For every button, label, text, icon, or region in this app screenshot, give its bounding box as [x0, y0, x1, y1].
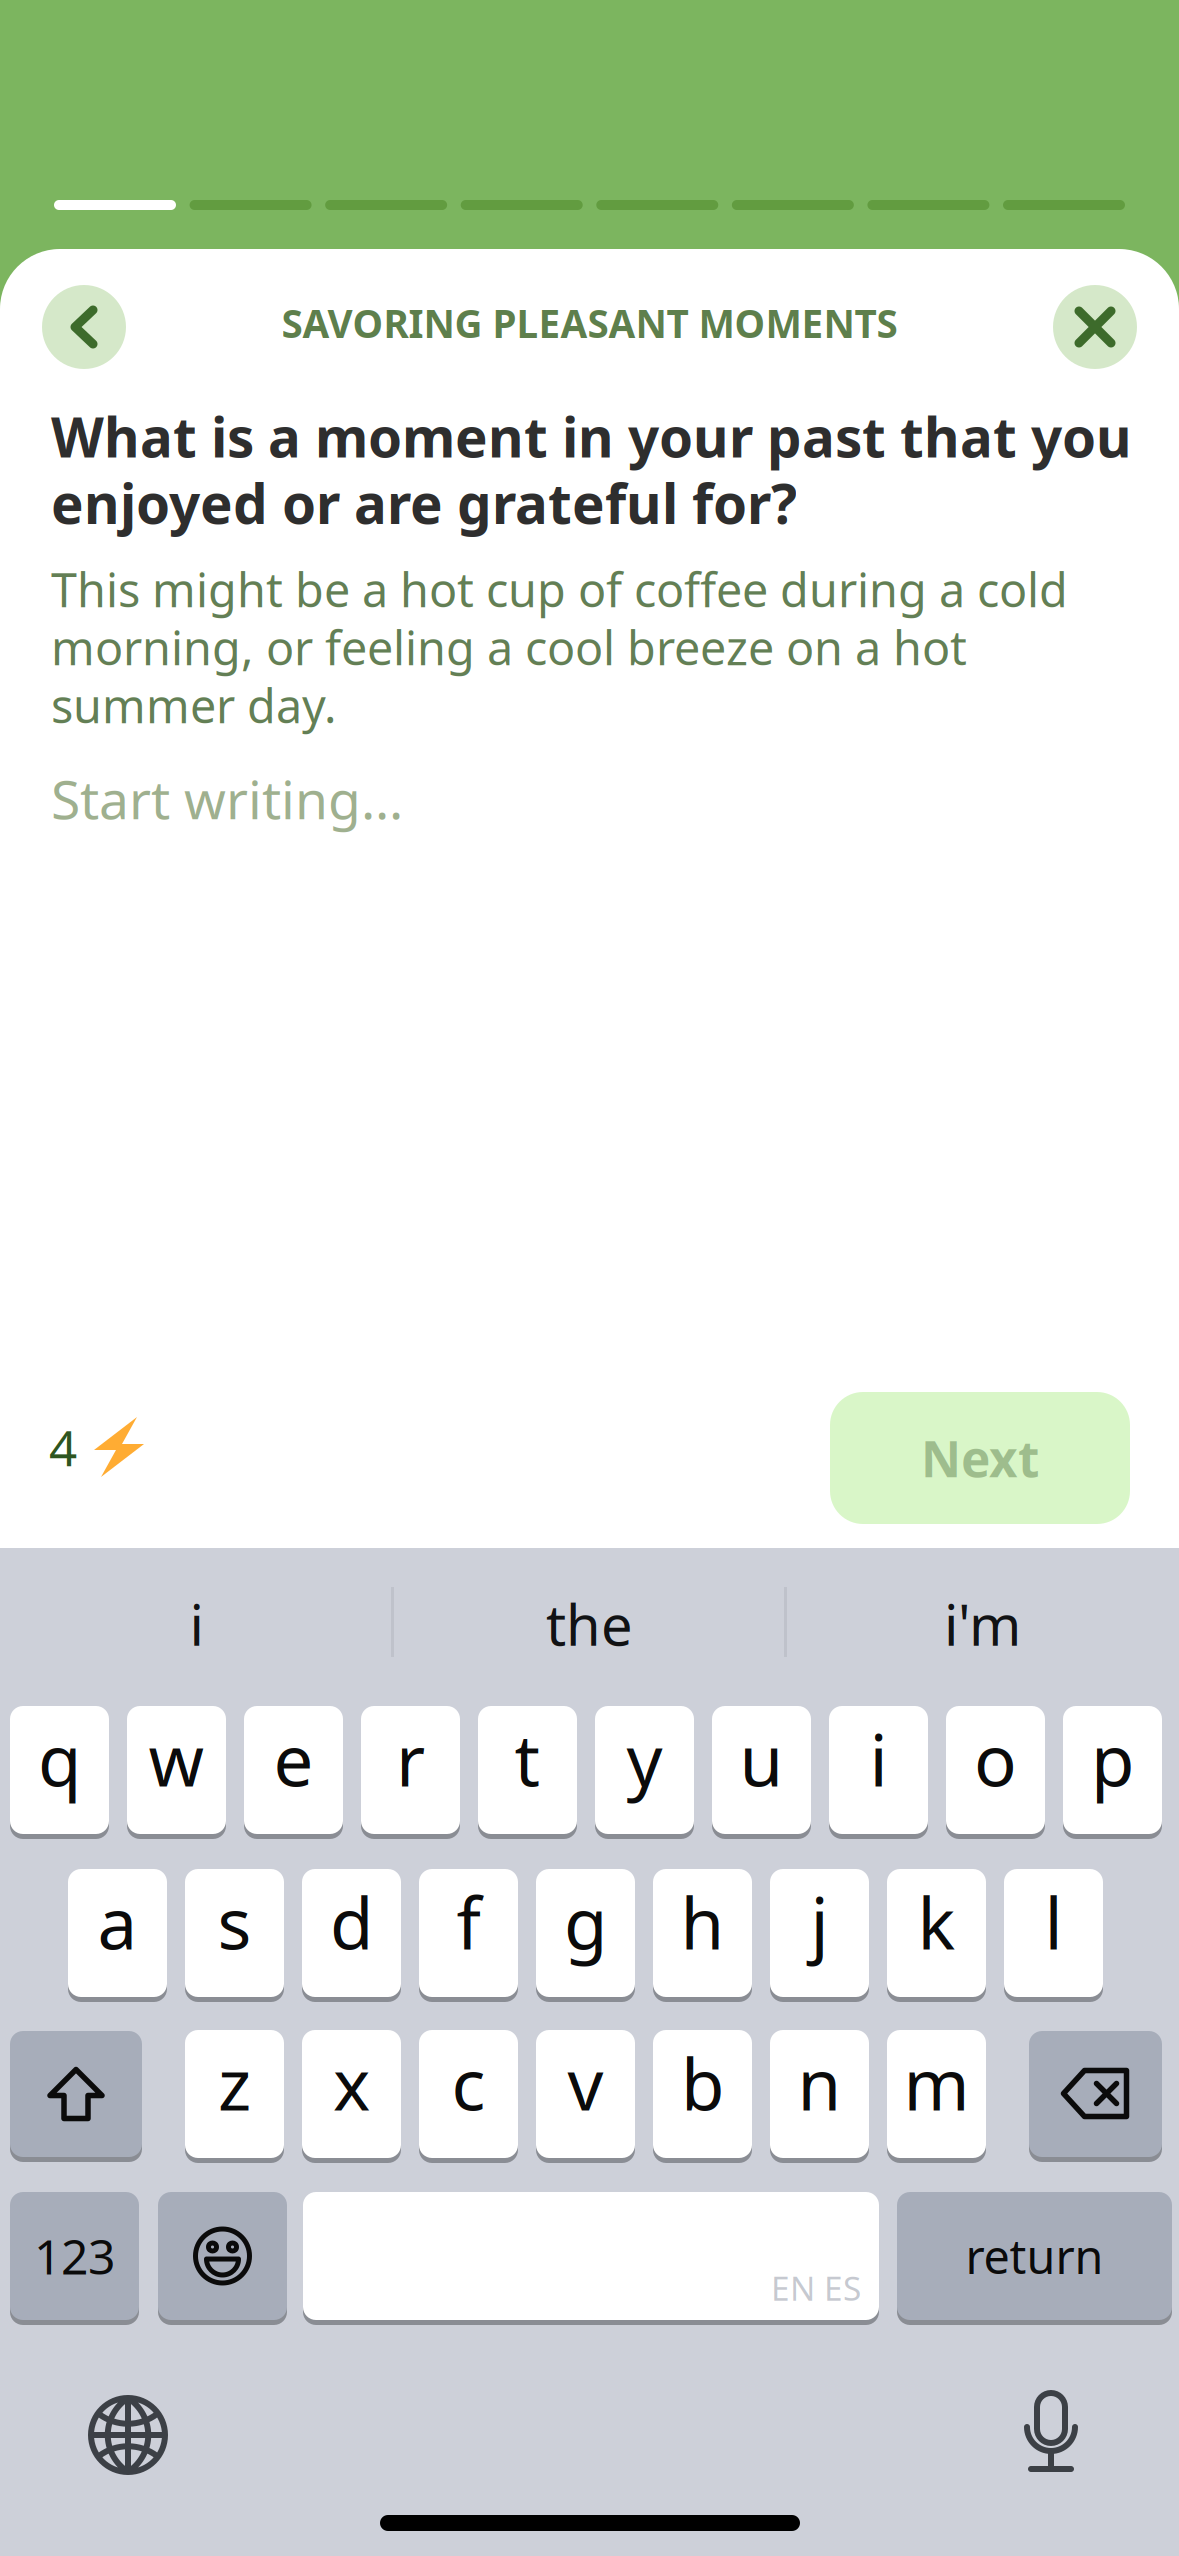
button[interactable]: g — [536, 1869, 635, 2002]
staticText: h — [680, 1875, 724, 1969]
button[interactable]: t — [478, 1706, 577, 1839]
button[interactable]: l — [1004, 1869, 1103, 2002]
button[interactable]: o — [946, 1706, 1045, 1839]
button[interactable] — [10, 2192, 139, 2325]
button[interactable]: Delete — [1029, 2031, 1162, 2162]
button[interactable]: w — [127, 1706, 226, 1839]
button[interactable]: v — [536, 2030, 635, 2163]
staticText: Next — [921, 1425, 1039, 1491]
staticText: EN ES — [771, 2266, 861, 2310]
button[interactable]: m — [887, 2030, 986, 2163]
staticText: d — [330, 1875, 373, 1969]
button[interactable]: h — [653, 1869, 752, 2002]
staticText: l — [1044, 1875, 1062, 1969]
staticText: f — [456, 1875, 480, 1969]
button[interactable]: i'm — [786, 1564, 1179, 1684]
button[interactable]: p — [1063, 1706, 1162, 1839]
button[interactable]: Back — [42, 285, 126, 369]
staticText: t — [514, 1712, 540, 1806]
button[interactable]: space — [303, 2192, 879, 2325]
button[interactable]: f — [419, 1869, 518, 2002]
button[interactable]: i — [0, 1564, 393, 1684]
button[interactable] — [897, 2192, 1172, 2325]
staticText: 123 — [34, 2224, 115, 2288]
staticText: g — [564, 1875, 607, 1969]
button[interactable]: u — [712, 1706, 811, 1839]
staticText: u — [739, 1712, 783, 1806]
button[interactable]: Close — [1053, 285, 1137, 369]
staticText: m — [903, 2036, 969, 2130]
button[interactable]: the — [393, 1564, 786, 1684]
staticText: v — [567, 2036, 603, 2130]
staticText: k — [917, 1875, 955, 1969]
staticText: What is a moment in your past that you e… — [51, 400, 1132, 539]
staticText: 4 — [49, 1414, 77, 1480]
staticText: a — [97, 1875, 137, 1969]
button[interactable]: Emoji — [158, 2192, 287, 2325]
staticText: i'm — [944, 1587, 1021, 1661]
staticText: x — [333, 2036, 370, 2130]
button[interactable]: b — [653, 2030, 752, 2163]
button[interactable]: x — [302, 2030, 401, 2163]
staticText: r — [396, 1712, 425, 1806]
button[interactable]: e — [244, 1706, 343, 1839]
button[interactable]: d — [302, 1869, 401, 2002]
staticText: c — [451, 2036, 485, 2130]
staticText: return — [965, 2225, 1103, 2287]
staticText: q — [38, 1712, 81, 1806]
button[interactable]: a — [68, 1869, 167, 2002]
button[interactable]: Dictate — [996, 2382, 1106, 2482]
staticText: i — [189, 1587, 203, 1661]
button[interactable]: c — [419, 2030, 518, 2163]
staticText: This might be a hot cup of coffee during… — [51, 558, 1068, 736]
staticText: p — [1091, 1712, 1134, 1806]
staticText: b — [681, 2036, 724, 2130]
staticText: n — [797, 2036, 841, 2130]
staticText: o — [974, 1712, 1017, 1806]
button[interactable]: i — [829, 1706, 928, 1839]
staticText: i — [869, 1712, 887, 1806]
staticText: SAVORING PLEASANT MOMENTS — [281, 297, 897, 349]
button[interactable]: r — [361, 1706, 460, 1839]
button[interactable]: j — [770, 1869, 869, 2002]
button[interactable]: z — [185, 2030, 284, 2163]
staticText: w — [148, 1712, 204, 1806]
button[interactable]: Change keyboard — [73, 2385, 183, 2485]
staticText: j — [810, 1875, 828, 1969]
button[interactable]: Shift — [10, 2031, 142, 2162]
button[interactable]: n — [770, 2030, 869, 2163]
staticText: Start writing... — [51, 763, 403, 834]
staticText: the — [546, 1587, 633, 1661]
button[interactable]: q — [10, 1706, 109, 1839]
button[interactable]: Next — [830, 1392, 1130, 1524]
staticText: e — [273, 1712, 313, 1806]
staticText: s — [217, 1875, 251, 1969]
staticText: z — [218, 2036, 251, 2130]
button[interactable]: s — [185, 1869, 284, 2002]
button[interactable]: k — [887, 1869, 986, 2002]
button[interactable]: y — [595, 1706, 694, 1839]
staticText: y — [626, 1712, 662, 1806]
